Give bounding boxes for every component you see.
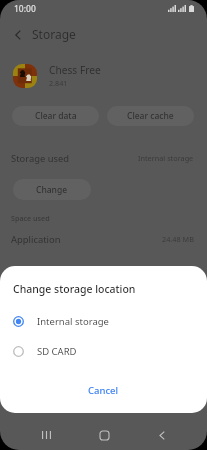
staticText: Clear cache: [127, 110, 174, 122]
staticText: 2.841: [49, 78, 68, 88]
button[interactable]: Clear cache: [107, 106, 194, 126]
staticText: Clear data: [35, 110, 77, 122]
staticText: Chess Free: [49, 63, 101, 77]
staticText: Change storage location: [13, 282, 136, 296]
staticText: Space used: [11, 213, 50, 223]
button[interactable]: Cancel: [78, 380, 129, 401]
staticText: 10:00: [14, 3, 36, 15]
button[interactable]: Application: [0, 229, 207, 249]
staticText: SD CARD: [37, 345, 77, 358]
button[interactable]: Home: [86, 421, 122, 449]
button[interactable]: SD CARD: [0, 339, 207, 363]
button[interactable]: Change: [13, 179, 91, 200]
staticText: Change: [36, 184, 68, 196]
button[interactable]: Recent apps: [28, 421, 64, 449]
button[interactable]: Clear data: [12, 106, 99, 126]
button[interactable]: Back: [144, 421, 180, 449]
button[interactable]: Navigate up: [7, 24, 28, 45]
button[interactable]: Internal storage: [0, 309, 207, 333]
staticText: Internal storage: [37, 315, 109, 328]
staticText: Storage used: [11, 152, 70, 165]
staticText: Application: [11, 233, 61, 246]
staticText: Internal storage: [138, 153, 194, 163]
staticText: 24.48 MB: [162, 234, 194, 244]
staticText: Cancel: [88, 384, 119, 397]
staticText: Storage: [32, 26, 76, 42]
